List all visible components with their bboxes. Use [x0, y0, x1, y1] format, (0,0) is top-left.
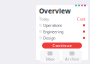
- button[interactable]: Continue: [42, 43, 82, 49]
- staticText: Design: [43, 35, 55, 40]
- button[interactable]: Inbox: [40, 51, 60, 63]
- staticText: Operations: [43, 23, 62, 28]
- staticText: Overview: [39, 6, 71, 15]
- staticText: Today: [39, 16, 49, 22]
- staticText: Cost: [77, 16, 85, 22]
- staticText: Archive: [65, 56, 79, 62]
- staticText: Engineering: [43, 29, 63, 34]
- button[interactable]: Operations: [39, 23, 85, 28]
- staticText: Inbox: [45, 56, 54, 62]
- button[interactable]: Engineering: [39, 29, 85, 34]
- button[interactable]: Design: [39, 35, 85, 40]
- staticText: Continue: [52, 43, 71, 48]
- button[interactable]: Archive: [62, 51, 82, 63]
